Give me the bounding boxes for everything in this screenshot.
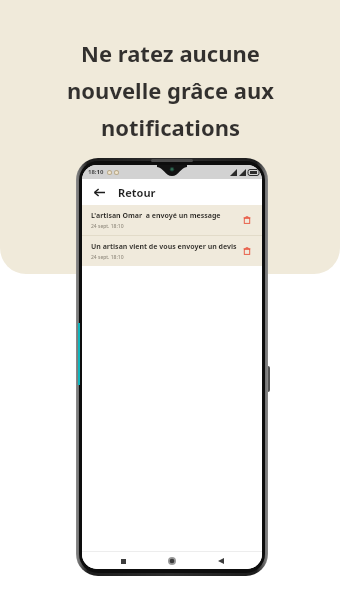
button[interactable]: Home bbox=[164, 553, 180, 569]
staticText: notifications bbox=[101, 112, 240, 142]
staticText: 18:10 bbox=[88, 168, 104, 176]
button[interactable]: Back bbox=[213, 553, 229, 569]
staticText: Retour bbox=[118, 185, 156, 200]
button[interactable]: Un artisan vient de vous envoyer un devi… bbox=[82, 236, 262, 266]
button[interactable]: Back bbox=[91, 184, 107, 200]
staticText: 24 sept. 18:10 bbox=[91, 223, 124, 230]
staticText: Ne ratez aucune bbox=[81, 38, 260, 68]
button[interactable]: Recent apps bbox=[115, 553, 131, 569]
staticText: nouvelle grâce aux bbox=[67, 75, 274, 105]
button[interactable]: Delete notification bbox=[240, 244, 254, 258]
staticText: L'artisan Omar a envoyé un message bbox=[91, 211, 221, 221]
button[interactable]: Delete notification bbox=[240, 213, 254, 227]
button[interactable]: L'artisan Omar a envoyé un message bbox=[82, 205, 262, 235]
staticText: 24 sept. 18:10 bbox=[91, 254, 124, 261]
staticText: Un artisan vient de vous envoyer un devi… bbox=[91, 242, 237, 252]
